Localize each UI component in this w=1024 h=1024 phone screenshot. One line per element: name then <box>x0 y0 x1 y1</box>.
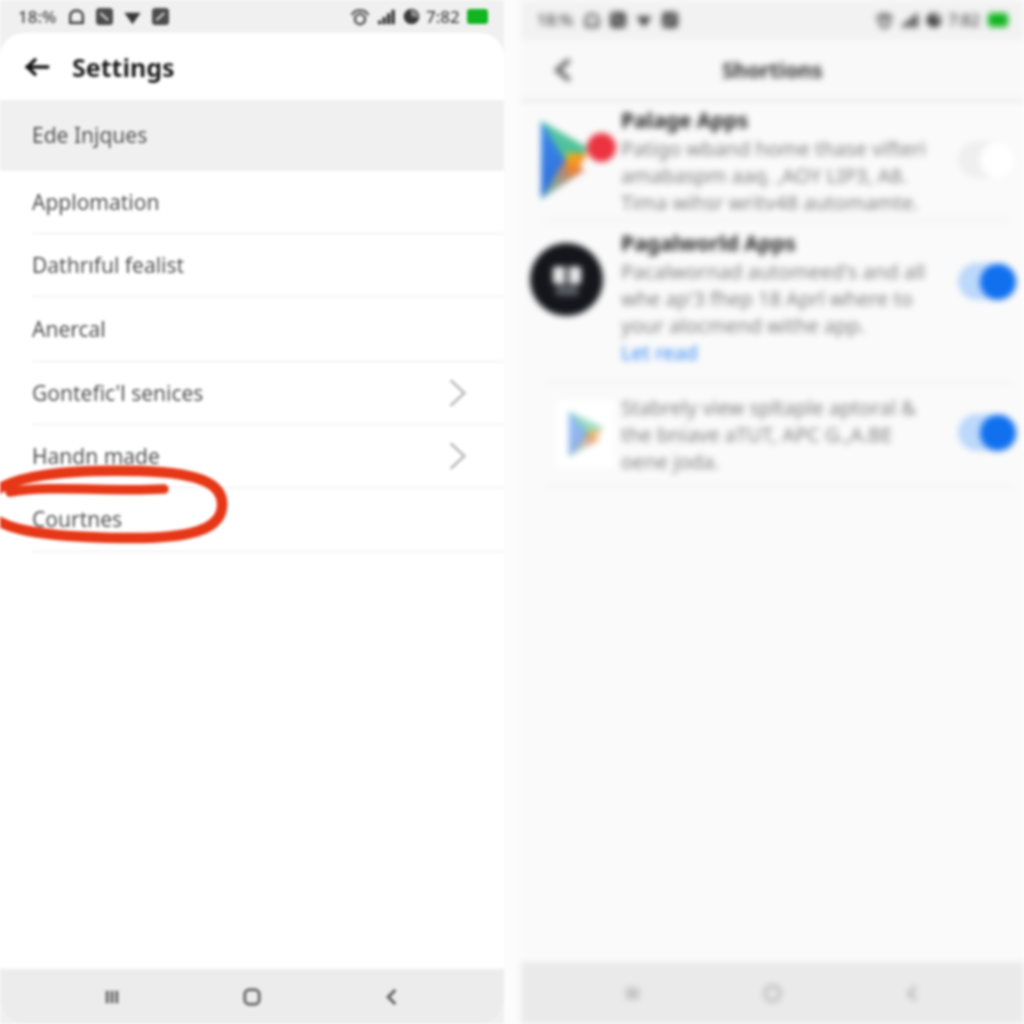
staticText: Settings <box>72 50 175 84</box>
button[interactable]: Toggle <box>958 263 1017 300</box>
button[interactable]: Handn made <box>0 425 504 487</box>
button[interactable]: Home <box>182 969 322 1024</box>
staticText: Ede Injques <box>32 121 148 150</box>
button[interactable]: Anercal <box>0 297 504 361</box>
staticText: Palage Apps <box>621 106 749 135</box>
staticText: Dathrıful fealist <box>32 251 185 280</box>
staticText: Gontefic'l senices <box>32 379 204 408</box>
button[interactable]: Toggle <box>958 141 1017 178</box>
button[interactable]: Home <box>702 962 842 1024</box>
staticText: Applomation <box>32 188 160 217</box>
button[interactable]: Gontefic'l senices <box>0 362 504 424</box>
button[interactable]: Stabrely view spltaple aptoral & the bni… <box>521 383 1024 485</box>
button[interactable]: Palage Apps <box>521 102 1024 220</box>
staticText: 18:% <box>537 9 574 31</box>
staticText: Shortions <box>722 56 823 85</box>
staticText: Handn made <box>32 442 160 471</box>
staticText: Patigo wband home thase vifteri amabaspm… <box>621 135 927 216</box>
staticText: Pacalwornad automeed's and all whe ap'3 … <box>621 258 926 339</box>
staticText: Stabrely view spltaple aptoral & the bni… <box>621 394 916 475</box>
staticText: 7:82 <box>426 5 460 28</box>
button[interactable]: Courtnes <box>0 488 504 551</box>
staticText: 18:% <box>18 5 57 28</box>
button[interactable]: Dathrıful fealist <box>0 234 504 296</box>
button[interactable]: Toggle <box>958 414 1017 451</box>
button[interactable]: Back <box>322 969 462 1024</box>
button[interactable]: Applomation <box>0 171 504 233</box>
button[interactable]: Let read <box>621 339 698 366</box>
staticText: Pagalworld Apps <box>621 229 796 258</box>
button[interactable]: Ede Injques <box>0 100 504 171</box>
staticText: 7:82 <box>948 9 981 31</box>
staticText: Anercal <box>32 315 106 344</box>
button[interactable]: Back <box>14 44 60 90</box>
button[interactable]: Recent apps <box>42 969 182 1024</box>
button[interactable]: Back <box>543 50 583 90</box>
staticText: Courtnes <box>32 505 123 534</box>
button[interactable]: Recent apps <box>563 962 702 1024</box>
button[interactable]: Pagalworld Apps <box>521 221 1024 382</box>
